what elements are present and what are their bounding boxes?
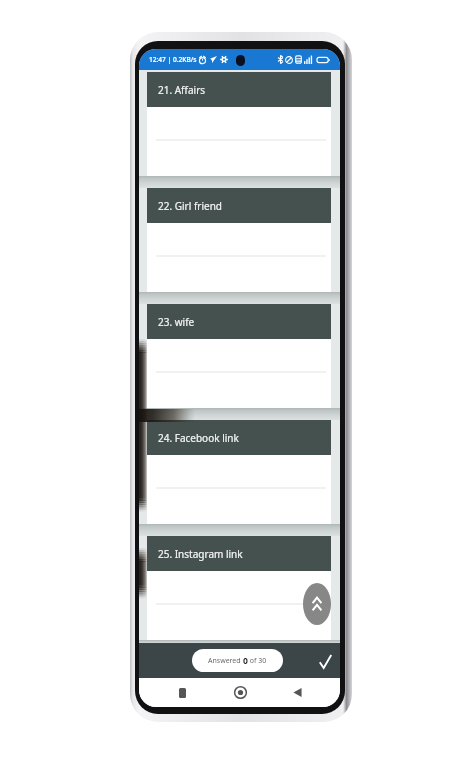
button[interactable]: 22. Girl friend — [147, 188, 331, 292]
button[interactable]: Answered — [192, 649, 283, 672]
button[interactable]: 25. Instagram link — [147, 536, 331, 640]
button[interactable]: 23. wife — [147, 304, 331, 408]
staticText: 23. wife — [158, 315, 195, 329]
staticText: 0 — [243, 655, 248, 667]
staticText: 22. Girl friend — [158, 199, 223, 213]
button[interactable]: Scroll to top — [303, 583, 331, 625]
button[interactable]: Submit answers — [312, 648, 338, 674]
staticText: 24. Facebook link — [158, 431, 239, 445]
staticText: 12:47 | 0.2KB/s — [149, 55, 197, 64]
staticText: 25. Instagram link — [158, 547, 243, 561]
button[interactable]: Recent apps — [167, 678, 197, 707]
staticText: 21. Affairs — [158, 83, 206, 97]
staticText: of 30 — [248, 656, 267, 666]
staticText: Answered — [208, 656, 243, 666]
button[interactable]: Home — [225, 678, 255, 707]
button[interactable]: Back — [282, 678, 312, 707]
button[interactable]: 24. Facebook link — [147, 420, 331, 524]
button[interactable]: 21. Affairs — [147, 72, 331, 176]
